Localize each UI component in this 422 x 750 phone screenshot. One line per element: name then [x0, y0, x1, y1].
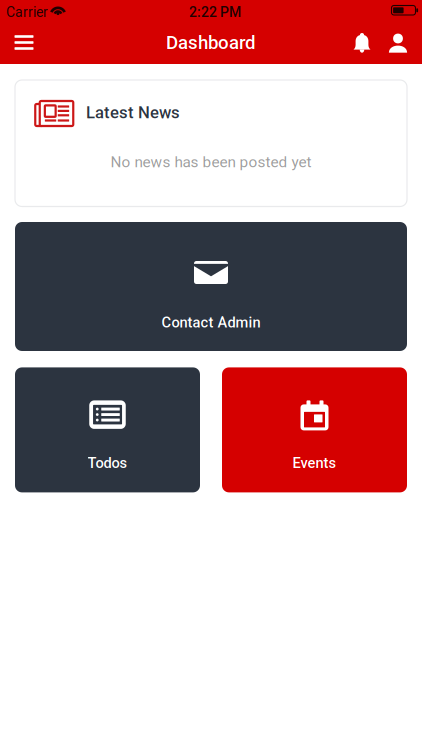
button[interactable]: Menu	[2, 21, 46, 64]
button[interactable]: Profile	[383, 17, 413, 60]
staticText: No news has been posted yet	[110, 153, 311, 171]
staticText: Contact Admin	[161, 314, 260, 331]
button[interactable]: Todos	[15, 367, 200, 492]
staticText: Dashboard	[166, 32, 256, 53]
staticText: Latest News	[86, 103, 180, 122]
button[interactable]: Contact Admin	[15, 222, 407, 351]
button[interactable]: Events	[222, 367, 407, 492]
staticText: 2:22 PM	[189, 4, 241, 20]
button[interactable]: Notifications	[347, 20, 377, 63]
staticText: Carrier	[6, 4, 48, 20]
staticText: Todos	[87, 454, 127, 472]
staticText: Events	[292, 454, 336, 472]
